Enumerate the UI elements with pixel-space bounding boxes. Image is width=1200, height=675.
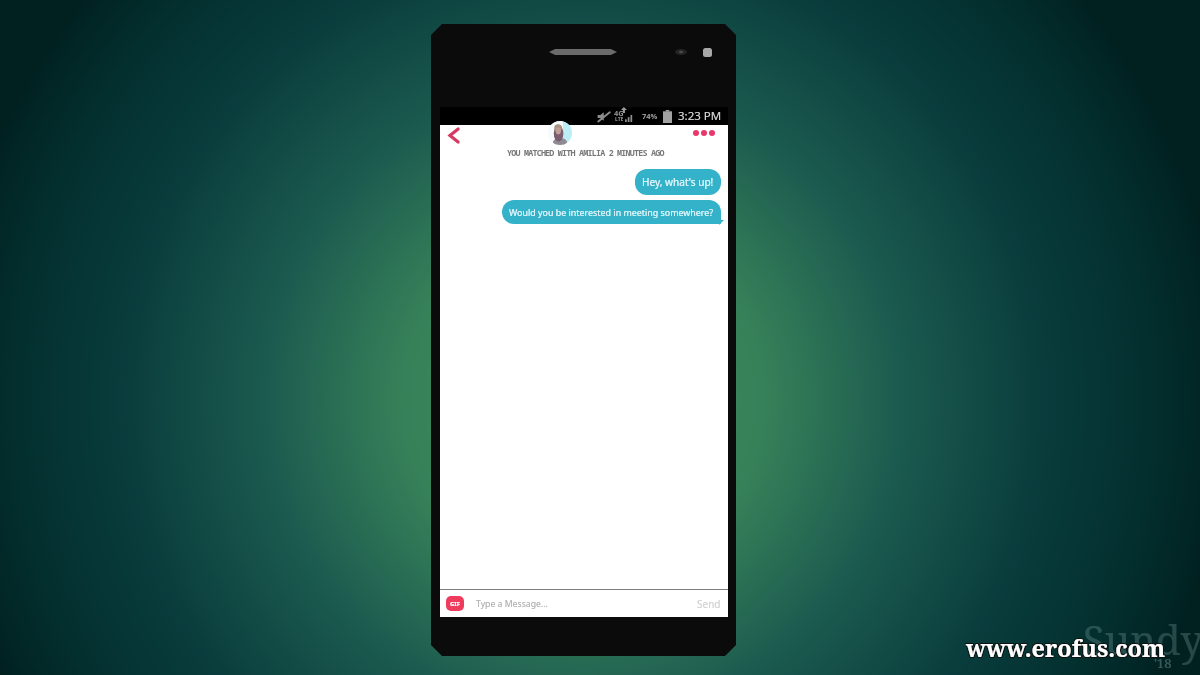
staticText: Type a Message... bbox=[476, 598, 548, 610]
staticText: www.erofus.com bbox=[967, 632, 1167, 664]
button[interactable]: Would you be interested in meeting somew… bbox=[502, 200, 721, 224]
button[interactable]: More options bbox=[689, 126, 719, 140]
staticText: www.erofus.com bbox=[966, 631, 1166, 663]
staticText: '18 bbox=[1154, 654, 1172, 672]
button[interactable]: Send bbox=[690, 590, 728, 617]
staticText: www.erofus.com bbox=[966, 632, 1166, 664]
staticText: YOU MATCHED WITH AMILIA 2 MINUTES AGO bbox=[507, 147, 664, 158]
button[interactable]: Type a Message... bbox=[476, 590, 690, 617]
staticText: Hey, what's up! bbox=[642, 175, 714, 189]
staticText: www.erofus.com bbox=[967, 633, 1167, 665]
staticText: 3:23 PM bbox=[678, 108, 722, 124]
staticText: 74% bbox=[642, 111, 658, 121]
staticText: www.erofus.com bbox=[967, 631, 1167, 663]
staticText: Sundy bbox=[1083, 612, 1200, 666]
staticText: www.erofus.com bbox=[965, 631, 1165, 663]
staticText: 4G bbox=[614, 108, 624, 118]
button[interactable]: Send a GIF bbox=[446, 596, 464, 611]
staticText: www.erofus.com bbox=[966, 633, 1166, 665]
staticText: www.erofus.com bbox=[965, 632, 1165, 664]
staticText: Send bbox=[697, 597, 721, 611]
button[interactable]: Profile photo bbox=[548, 121, 572, 145]
staticText: GIF bbox=[450, 600, 460, 608]
staticText: LTE bbox=[615, 116, 624, 123]
staticText: Would you be interested in meeting somew… bbox=[509, 206, 714, 218]
button[interactable]: Hey, what's up! bbox=[635, 169, 721, 195]
staticText: www.erofus.com bbox=[965, 633, 1165, 665]
button[interactable]: Back bbox=[443, 125, 463, 145]
